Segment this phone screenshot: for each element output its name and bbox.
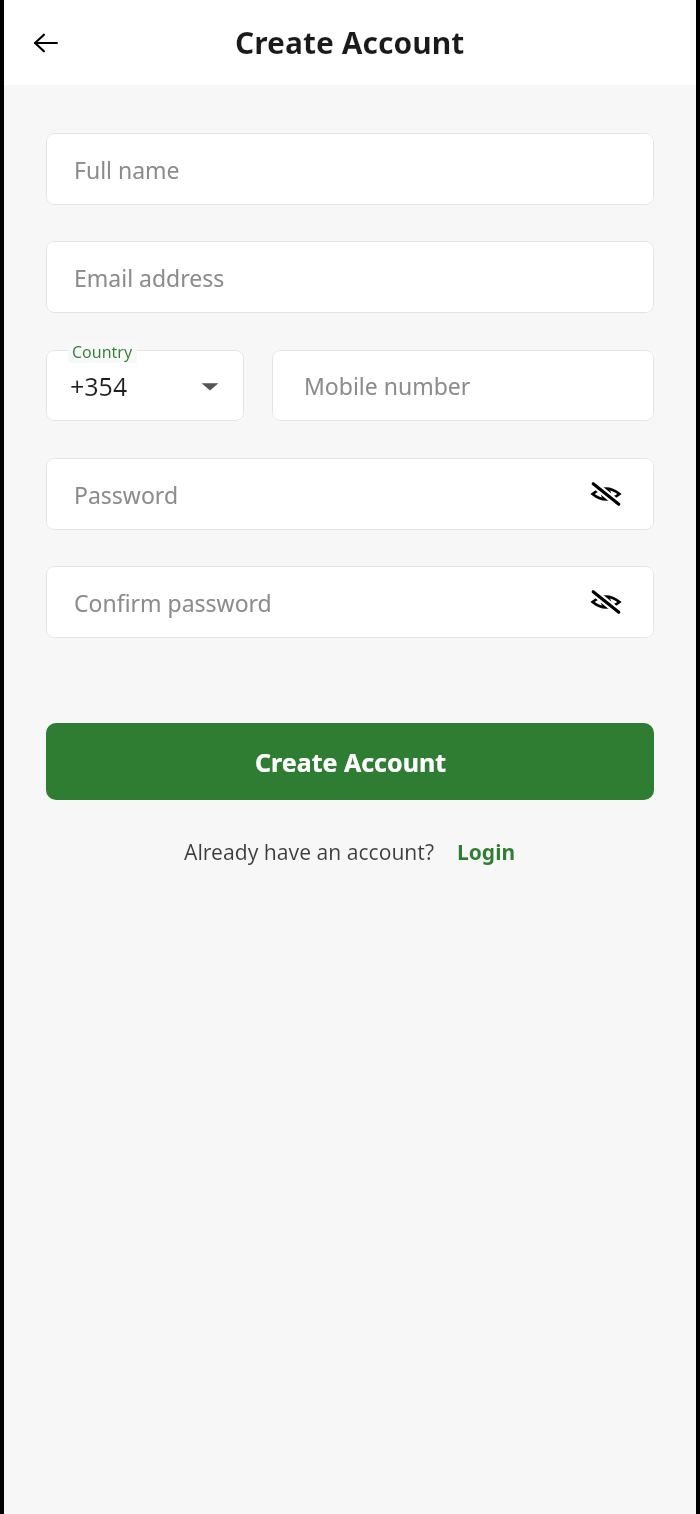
button[interactable]: Email address [46, 241, 654, 313]
button[interactable]: Full name [46, 133, 654, 205]
staticText: Already have an account? [184, 838, 435, 867]
button[interactable]: Mobile number [272, 350, 654, 421]
button[interactable]: Password [46, 458, 654, 530]
staticText: Email address [74, 262, 225, 293]
staticText: Full name [74, 154, 180, 185]
staticText: +354 [70, 369, 128, 403]
button[interactable]: Create Account [46, 723, 654, 800]
button[interactable]: Back [24, 21, 68, 65]
button[interactable]: +354 [46, 350, 244, 421]
button[interactable]: Show password [584, 472, 628, 516]
staticText: Create Account [235, 22, 465, 63]
button[interactable]: Show confirm password [584, 580, 628, 624]
staticText: Mobile number [304, 370, 471, 401]
button[interactable]: Login [457, 838, 516, 867]
staticText: Confirm password [74, 587, 272, 618]
button[interactable]: Confirm password [46, 566, 654, 638]
staticText: Login [457, 838, 516, 867]
staticText: Country [72, 341, 133, 363]
staticText: Create Account [255, 745, 446, 779]
staticText: Password [74, 479, 179, 510]
